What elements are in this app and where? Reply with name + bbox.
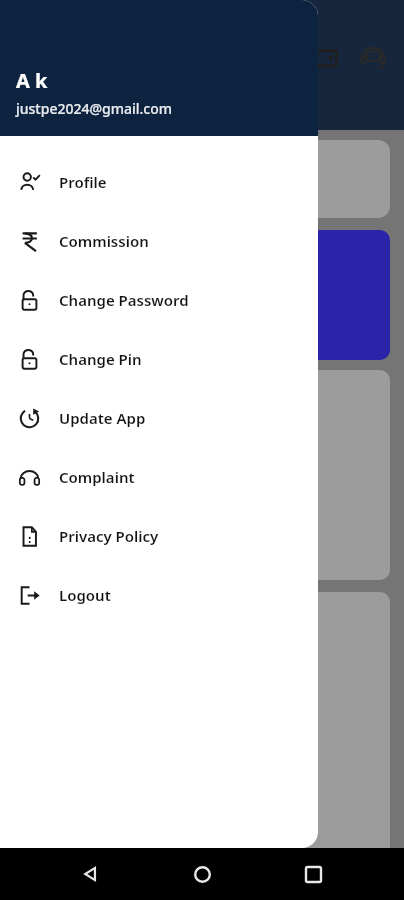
button[interactable]: Logout bbox=[0, 565, 318, 624]
staticText: A k bbox=[16, 67, 48, 94]
button[interactable]: Complaint bbox=[0, 447, 318, 506]
staticText: Privacy Policy bbox=[59, 526, 159, 546]
button[interactable]: Back bbox=[71, 854, 111, 894]
staticText: Profile bbox=[59, 172, 107, 192]
staticText: Logout bbox=[59, 585, 111, 605]
staticText: Commission bbox=[59, 231, 149, 251]
button[interactable]: Update App bbox=[0, 388, 318, 447]
button[interactable]: Home bbox=[182, 854, 222, 894]
staticText: Welcome t bbox=[14, 99, 100, 122]
staticText: Complaint bbox=[59, 467, 135, 487]
button[interactable]: Change Password bbox=[0, 270, 318, 329]
button[interactable]: Profile bbox=[0, 152, 318, 211]
button[interactable]: Privacy Policy bbox=[0, 506, 318, 565]
button[interactable]: Support bbox=[352, 37, 394, 79]
staticText: justpe2024@gmail.com bbox=[16, 99, 173, 118]
staticText: allet bbox=[26, 168, 60, 190]
button[interactable]: Commission bbox=[0, 211, 318, 270]
button[interactable]: Change Pin bbox=[0, 329, 318, 388]
button[interactable]: Recent apps bbox=[293, 854, 333, 894]
staticText: Update App bbox=[59, 408, 146, 428]
button[interactable]: Wallet bbox=[304, 37, 346, 79]
button[interactable]: allet bbox=[14, 140, 390, 218]
staticText: Change Password bbox=[59, 290, 189, 310]
staticText: Change Pin bbox=[59, 349, 142, 369]
button[interactable]: Landline bbox=[14, 230, 390, 360]
